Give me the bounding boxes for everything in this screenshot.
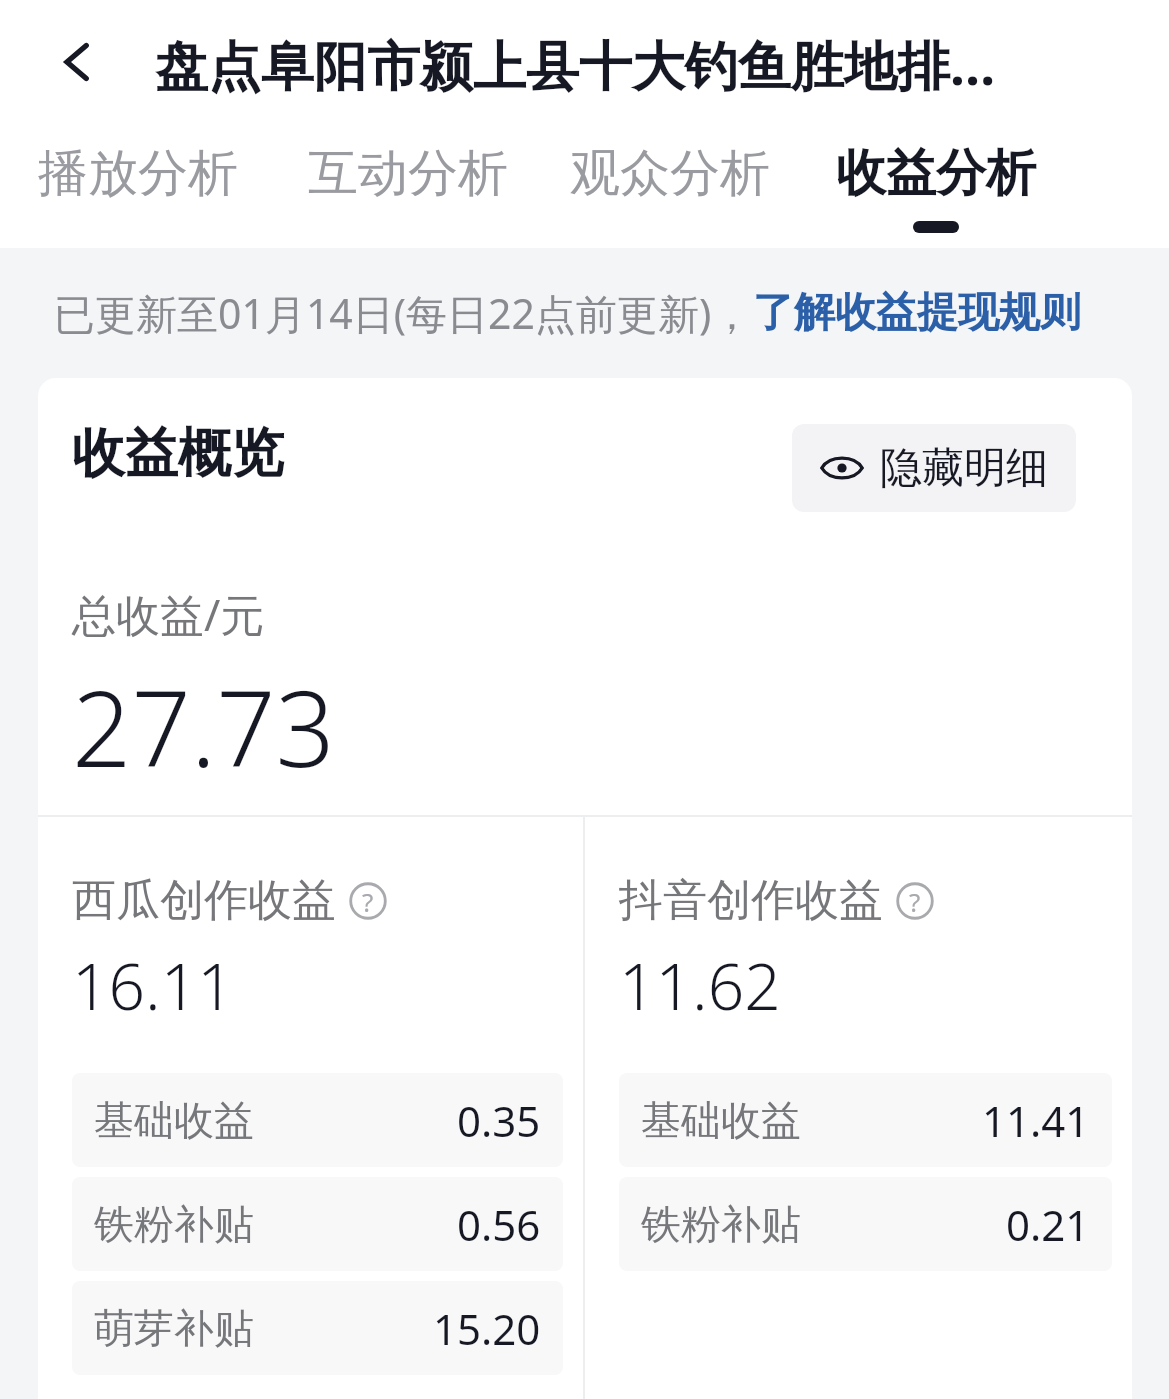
staticText: 盘点阜阳市颍上县十大钓鱼胜地排… — [155, 28, 996, 100]
staticText: 隐藏明细 — [880, 442, 1048, 495]
button[interactable]: 互动分析 — [300, 124, 516, 248]
button[interactable]: Back — [38, 22, 118, 102]
staticText: 铁粉补贴 — [641, 1199, 801, 1249]
button[interactable]: 收益分析 — [828, 124, 1044, 248]
staticText: 铁粉补贴 — [94, 1199, 254, 1249]
staticText: 抖音创作收益 — [619, 873, 883, 928]
button[interactable]: Help — [895, 881, 935, 921]
button[interactable]: Help — [348, 881, 388, 921]
button[interactable]: 基础收益 — [619, 1073, 1112, 1167]
staticText: 收益分析 — [836, 142, 1036, 205]
staticText: 观众分析 — [570, 142, 770, 205]
staticText: 总收益/元 — [72, 584, 265, 644]
staticText: 0.35 — [457, 1092, 541, 1149]
staticText: 27.73 — [72, 656, 335, 798]
button[interactable]: 播放分析 — [30, 124, 246, 248]
staticText: 11.62 — [619, 942, 781, 1029]
staticText: 15.20 — [433, 1300, 541, 1357]
button[interactable]: 观众分析 — [562, 124, 778, 248]
staticText: 互动分析 — [308, 142, 508, 205]
button[interactable]: 隐藏明细 — [792, 424, 1076, 512]
staticText: 萌芽补贴 — [94, 1303, 254, 1353]
staticText: 11.41 — [982, 1092, 1090, 1149]
staticText: 播放分析 — [38, 142, 238, 205]
staticText: 基础收益 — [94, 1095, 254, 1145]
staticText: 了解收益提现规则 — [753, 287, 1081, 339]
staticText: 已更新至01月14日(每日22点前更新)， — [54, 285, 753, 341]
staticText: 16.11 — [72, 942, 234, 1029]
staticText: 基础收益 — [641, 1095, 801, 1145]
button[interactable]: 铁粉补贴 — [72, 1177, 563, 1271]
staticText: 收益概览 — [72, 420, 284, 487]
button[interactable]: 基础收益 — [72, 1073, 563, 1167]
staticText: 0.21 — [1006, 1196, 1090, 1253]
button[interactable]: 了解收益提现规则 — [753, 287, 1081, 339]
staticText: ? — [909, 884, 921, 919]
staticText: 西瓜创作收益 — [72, 873, 336, 928]
button[interactable]: 萌芽补贴 — [72, 1281, 563, 1375]
button[interactable]: 铁粉补贴 — [619, 1177, 1112, 1271]
staticText: ? — [362, 884, 374, 919]
staticText: 0.56 — [457, 1196, 541, 1253]
